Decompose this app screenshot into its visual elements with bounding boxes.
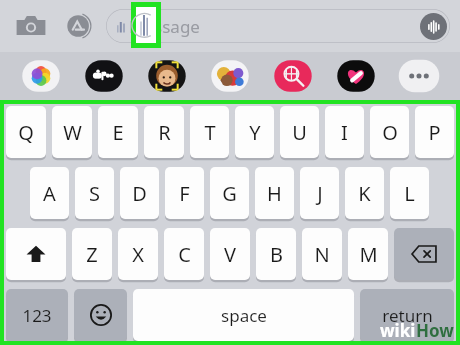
button[interactable]: S xyxy=(75,167,114,219)
staticText: R xyxy=(158,119,171,146)
staticText: I xyxy=(341,119,348,146)
button[interactable]: space xyxy=(133,289,354,341)
button[interactable]: Emoji xyxy=(74,289,127,341)
staticText: S xyxy=(89,180,100,207)
staticText: V xyxy=(224,241,236,268)
button[interactable]: P xyxy=(415,106,454,158)
staticText: Y xyxy=(249,119,261,146)
staticText: O xyxy=(382,119,398,146)
staticText: A xyxy=(43,180,56,207)
staticText: L xyxy=(404,180,415,207)
button[interactable]: F xyxy=(165,167,204,219)
staticText: E xyxy=(112,119,124,146)
staticText: D xyxy=(132,180,147,207)
button[interactable]: Z xyxy=(72,228,112,280)
button[interactable]: Message xyxy=(106,9,450,43)
staticText: G xyxy=(222,180,237,207)
button[interactable]: R xyxy=(144,106,184,158)
staticText: Message xyxy=(129,15,200,38)
button[interactable]: Stickers xyxy=(202,57,258,95)
staticText: T xyxy=(204,119,216,146)
staticText: How xyxy=(416,319,454,342)
button[interactable]: M xyxy=(348,228,388,280)
button[interactable]: Q xyxy=(6,106,46,158)
staticText: J xyxy=(317,180,323,207)
staticText: X xyxy=(132,241,144,268)
button[interactable]: return xyxy=(360,289,454,341)
button[interactable]: I xyxy=(325,106,364,158)
button[interactable]: E xyxy=(98,106,138,158)
button[interactable]: Memoji xyxy=(139,57,195,95)
button[interactable]: V xyxy=(210,228,250,280)
staticText: Q xyxy=(18,119,34,146)
staticText: space xyxy=(221,304,267,327)
button[interactable]: Image search xyxy=(265,57,321,95)
button[interactable]: X xyxy=(118,228,158,280)
staticText: N xyxy=(314,241,330,268)
button[interactable]: K xyxy=(345,167,384,219)
staticText: Z xyxy=(86,241,98,268)
button[interactable]: J xyxy=(300,167,339,219)
staticText: K xyxy=(358,180,371,207)
staticText: W xyxy=(63,119,82,146)
staticText: F xyxy=(179,180,190,207)
button[interactable]: More xyxy=(391,57,447,95)
button[interactable]: A xyxy=(30,167,69,219)
button[interactable]: Shift xyxy=(6,228,66,280)
button[interactable]: Apple Pay xyxy=(76,57,132,95)
button[interactable]: C xyxy=(164,228,204,280)
button[interactable]: D xyxy=(120,167,159,219)
button[interactable]: T xyxy=(190,106,229,158)
button[interactable]: W xyxy=(52,106,92,158)
button[interactable]: Y xyxy=(235,106,274,158)
button[interactable]: Record audio xyxy=(420,13,447,40)
button[interactable]: O xyxy=(370,106,409,158)
button[interactable]: Backspace xyxy=(394,228,454,280)
staticText: H xyxy=(267,180,282,207)
staticText: C xyxy=(178,241,191,268)
button[interactable]: N xyxy=(302,228,342,280)
button[interactable]: App Store xyxy=(62,9,96,43)
staticText: M xyxy=(359,241,378,268)
button[interactable]: H xyxy=(255,167,294,219)
staticText: U xyxy=(292,119,307,146)
button[interactable]: Digital Touch xyxy=(328,57,384,95)
button[interactable]: G xyxy=(210,167,249,219)
button[interactable]: B xyxy=(256,228,296,280)
staticText: return xyxy=(382,304,433,327)
staticText: B xyxy=(270,241,283,268)
staticText: 123 xyxy=(22,304,52,327)
button[interactable]: Photos xyxy=(13,57,69,95)
staticText: wiki xyxy=(380,319,416,342)
button[interactable]: L xyxy=(390,167,429,219)
button[interactable]: U xyxy=(280,106,319,158)
button[interactable]: 123 xyxy=(6,289,68,341)
staticText: P xyxy=(428,119,441,146)
button[interactable]: Camera xyxy=(14,9,48,43)
